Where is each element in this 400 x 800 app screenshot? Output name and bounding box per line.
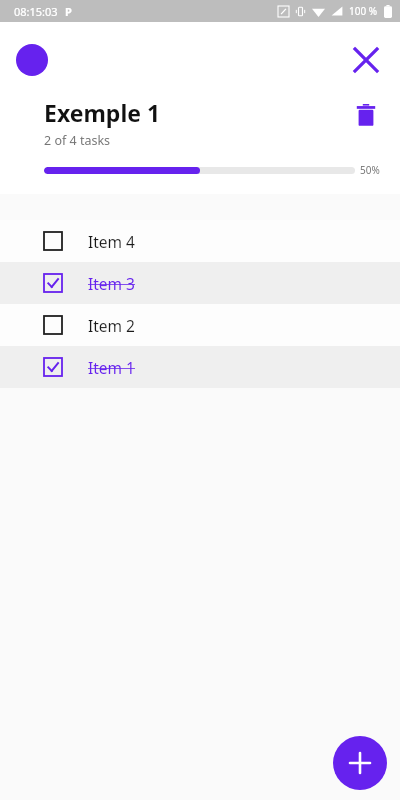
button[interactable]: Close [344,38,388,82]
staticText: Item 1 [88,357,135,378]
staticText: 50% [360,163,380,177]
staticText: 100 % [349,4,378,18]
button[interactable]: Add task [333,736,387,790]
button[interactable]: Item 2 [0,304,400,346]
staticText: 08:15:03 [14,4,58,19]
button[interactable]: Item 4 [0,220,400,262]
staticText: Item 4 [88,231,135,252]
button[interactable]: Item 1 [0,346,400,388]
button[interactable]: Item 3 [0,262,400,304]
staticText: Exemple 1 [44,97,161,128]
staticText: 2 of 4 tasks [44,132,111,149]
staticText: Item 2 [88,315,135,336]
button[interactable]: Profile [16,44,48,76]
staticText: Item 3 [88,273,135,294]
button[interactable]: Delete list [344,93,388,137]
staticText: P [65,4,72,19]
